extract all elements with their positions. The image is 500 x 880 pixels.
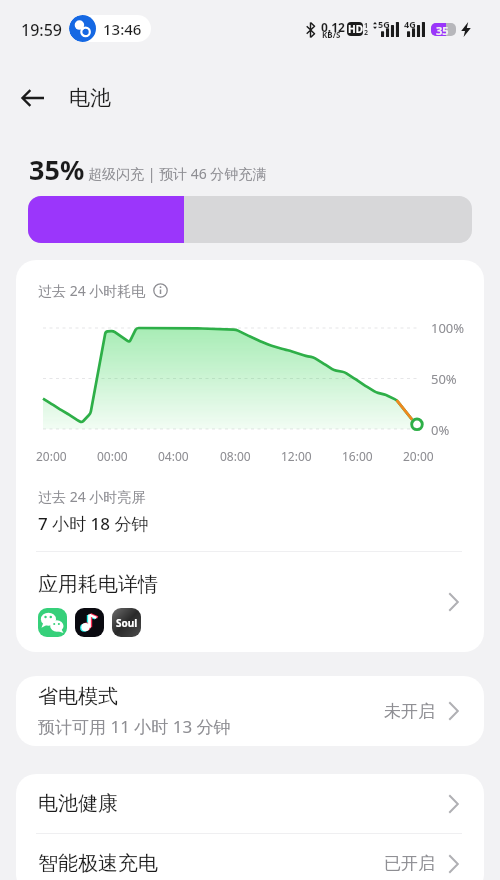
staticText: 35% <box>29 151 85 188</box>
staticText: 12:00 <box>281 448 312 464</box>
staticText: 00:00 <box>97 448 128 464</box>
staticText: 08:00 <box>220 448 251 464</box>
staticText: 20:00 <box>403 448 434 464</box>
button[interactable]: Back <box>11 76 55 120</box>
staticText: 超级闪充 | 预计 46 分钟充满 <box>88 164 267 183</box>
staticText: 100% <box>431 319 465 337</box>
staticText: 5G <box>378 18 390 30</box>
staticText: 04:00 <box>158 448 189 464</box>
staticText: 1 <box>364 21 369 31</box>
staticText: Soul <box>116 616 138 630</box>
button[interactable]: 应用耗电详情 <box>16 552 484 652</box>
staticText: 未开启 <box>384 701 435 722</box>
staticText: 已开启 <box>384 853 435 874</box>
staticText: 过去 24 小时耗电 <box>38 281 146 300</box>
staticText: 35 <box>436 23 449 36</box>
button[interactable]: 智能极速充电 <box>16 834 484 880</box>
staticText: 16:00 <box>342 448 373 464</box>
staticText: 4G <box>404 18 416 30</box>
staticText: HD <box>348 22 363 36</box>
button[interactable]: 省电模式 <box>16 676 484 746</box>
staticText: 电池健康 <box>38 791 442 816</box>
staticText: 0% <box>431 421 450 439</box>
staticText: 应用耗电详情 <box>38 572 158 597</box>
staticText: 智能极速充电 <box>38 851 384 876</box>
staticText: 预计可用 11 小时 13 分钟 <box>38 715 231 738</box>
staticText: 过去 24 小时亮屏 <box>38 487 146 506</box>
staticText: 电池 <box>69 85 111 111</box>
staticText: 2 <box>364 28 369 38</box>
staticText: 20:00 <box>36 448 67 464</box>
staticText: 0.12 <box>321 19 345 35</box>
staticText: 省电模式 <box>38 684 118 709</box>
staticText: 19:59 <box>21 19 62 41</box>
button[interactable]: 电池健康 <box>16 774 484 833</box>
staticText: 13:46 <box>103 19 142 39</box>
staticText: 50% <box>431 370 457 388</box>
staticText: KB/S <box>322 29 341 40</box>
button[interactable]: Timer <box>69 15 151 42</box>
staticText: 7 小时 18 分钟 <box>38 512 149 535</box>
